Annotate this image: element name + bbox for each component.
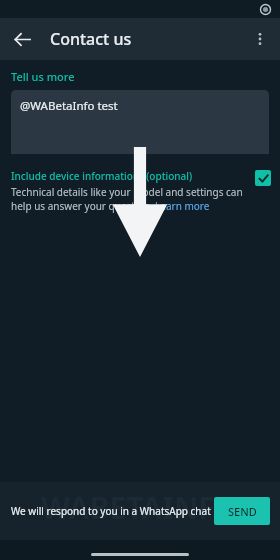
button[interactable]: Back: [5, 22, 39, 56]
button[interactable]: SEND: [214, 497, 270, 525]
staticText: SEND: [228, 504, 257, 519]
staticText: Technical details like your model and se…: [11, 185, 249, 213]
staticText: We will respond to you in a WhatsApp cha…: [11, 504, 211, 518]
button[interactable]: Include device information? (optional): [0, 169, 280, 213]
staticText: Include device information? (optional): [11, 169, 193, 183]
staticText: WABETAINFO: [41, 487, 239, 528]
staticText: @WABetaInfo test: [20, 98, 118, 114]
staticText: Contact us: [50, 28, 132, 50]
button[interactable]: More options: [243, 22, 277, 56]
button[interactable]: @WABetaInfo test: [11, 90, 269, 154]
staticText: Tell us more: [11, 69, 75, 84]
button[interactable]: Include device information checkbox: [255, 170, 271, 186]
